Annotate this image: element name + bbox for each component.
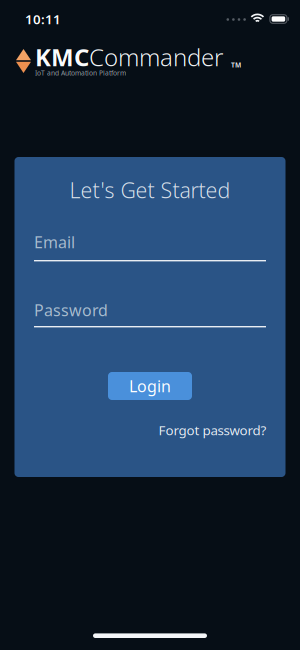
staticText: Login — [129, 375, 171, 397]
staticText: IoT and Automation Platform — [35, 69, 126, 77]
staticText: TM — [231, 61, 241, 69]
staticText: Let's Get Started — [69, 176, 230, 204]
button[interactable]: Forgot password? — [158, 423, 266, 437]
staticText: 10:11 — [25, 10, 61, 28]
button[interactable]: Password — [14, 303, 285, 327]
staticText: KMC — [35, 41, 89, 73]
button[interactable]: Email — [14, 235, 285, 261]
staticText: Email — [34, 231, 75, 253]
staticText: Password — [34, 299, 108, 321]
button[interactable]: Login — [108, 372, 192, 400]
staticText: Commander — [89, 41, 223, 73]
staticText: Forgot password? — [158, 421, 266, 439]
